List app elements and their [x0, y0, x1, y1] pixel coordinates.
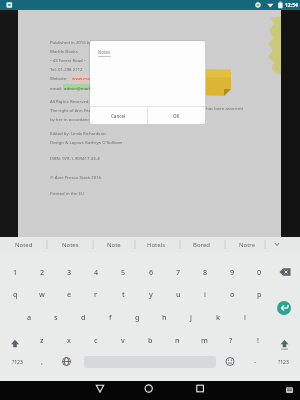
staticText: s: [54, 312, 58, 322]
staticText: j: [190, 312, 192, 322]
staticText: Design & Layout: Kathryn O'Sullivan: [50, 139, 123, 145]
staticText: • 43 Forest Road •: [50, 57, 86, 63]
staticText: Printed in the EU: [50, 190, 85, 196]
staticText: g: [135, 312, 140, 322]
staticText: e: [67, 289, 72, 299]
button[interactable]: Note: [94, 237, 134, 252]
staticText: 12:54: [285, 2, 298, 9]
staticText: 6: [149, 267, 154, 277]
staticText: The right of Ann Fitzg: [50, 107, 90, 113]
staticText: n: [175, 335, 180, 345]
staticText: 2: [40, 267, 45, 277]
staticText: ?123: [12, 359, 23, 366]
staticText: d: [81, 312, 86, 322]
staticText: b: [148, 335, 153, 345]
staticText: Notes: [98, 49, 111, 55]
staticText: admin@marb: [64, 85, 92, 91]
staticText: 1: [13, 267, 18, 277]
staticText: k: [216, 312, 221, 322]
staticText: All Rights Reserved. No p: [50, 98, 90, 104]
button[interactable]: [188, 378, 212, 400]
button[interactable]: Cancel: [90, 107, 147, 124]
staticText: by her in accordanc: [50, 116, 90, 122]
staticText: Published in 2016 by: [50, 39, 92, 45]
staticText: Cancel: [111, 113, 126, 119]
staticText: q: [13, 289, 18, 299]
staticText: Edited by: Linda Richardson: [50, 130, 106, 136]
staticText: has been asserted: [206, 105, 243, 111]
staticText: m: [201, 335, 208, 345]
staticText: h: [162, 312, 167, 322]
staticText: 9: [230, 267, 235, 277]
staticText: i: [204, 289, 206, 299]
staticText: Bored: [193, 241, 210, 249]
staticText: OK: [173, 113, 180, 119]
staticText: y: [149, 289, 153, 299]
button[interactable]: OK: [148, 107, 205, 124]
staticText: Note: [107, 241, 121, 249]
staticText: Marble Books: [50, 48, 78, 54]
button[interactable]: Hotels: [136, 237, 176, 252]
staticText: 7: [176, 267, 181, 277]
staticText: Hotels: [147, 241, 166, 249]
staticText: -: [254, 357, 257, 366]
staticText: 8: [203, 267, 208, 277]
staticText: ISBN: 978-1-909417-43-4: [50, 155, 100, 161]
staticText: Website:: [50, 75, 68, 81]
staticText: Notes: [62, 241, 79, 249]
button[interactable]: Noted: [4, 237, 44, 252]
staticText: p: [257, 289, 262, 299]
button[interactable]: Bored: [181, 237, 221, 252]
button[interactable]: [88, 378, 112, 400]
staticText: Noted: [15, 241, 33, 249]
staticText: z: [40, 335, 44, 345]
staticText: u: [176, 289, 181, 299]
staticText: 3: [67, 267, 72, 277]
staticText: f: [109, 312, 112, 322]
button[interactable]: [277, 301, 291, 315]
staticText: t: [122, 289, 125, 299]
button[interactable]: [137, 378, 161, 400]
staticText: ,: [41, 356, 43, 366]
staticText: v: [121, 335, 125, 345]
staticText: email:: [50, 85, 63, 91]
staticText: www.marble: [72, 75, 98, 81]
staticText: c: [94, 335, 98, 345]
staticText: w: [39, 289, 45, 299]
staticText: o: [230, 289, 235, 299]
staticText: 5: [121, 267, 126, 277]
staticText: © Áine Presco-Stack 2016: [50, 174, 102, 180]
staticText: ?123: [278, 359, 289, 366]
staticText: Tel: 01-298 2112: [50, 66, 83, 72]
staticText: Notre: [239, 241, 256, 249]
staticText: r: [94, 289, 98, 299]
staticText: !: [257, 335, 259, 345]
button[interactable]: Notre: [227, 237, 267, 252]
staticText: a: [27, 312, 32, 322]
staticText: x: [67, 335, 71, 345]
staticText: l: [244, 312, 246, 322]
staticText: 4: [94, 267, 99, 277]
staticText: ?: [229, 335, 233, 345]
button[interactable]: Notes: [50, 237, 90, 252]
staticText: 0: [257, 267, 262, 277]
